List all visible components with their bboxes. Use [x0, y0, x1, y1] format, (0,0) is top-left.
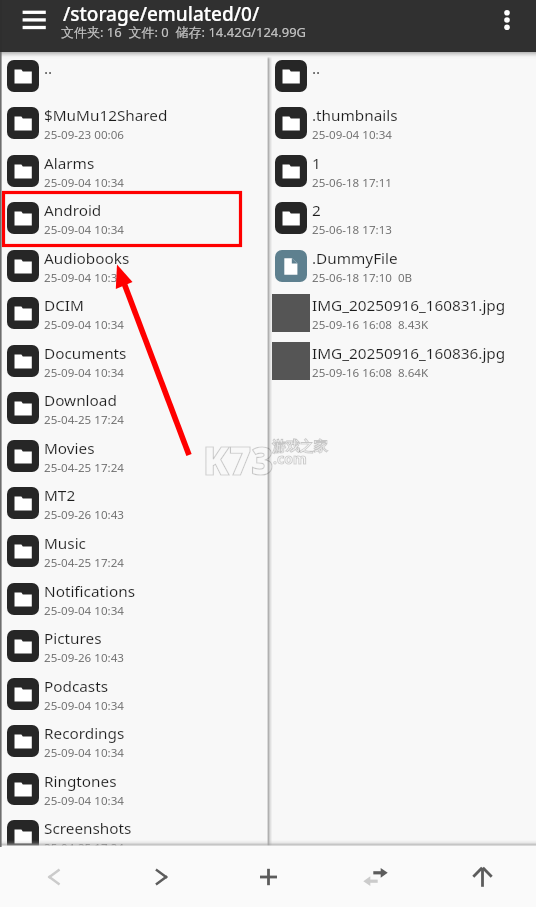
button[interactable]: Audiobooks [0, 242, 266, 290]
staticText: 25-09-26 10:43 [44, 507, 124, 523]
staticText: 25-09-04 10:34 [44, 793, 124, 809]
staticText: /storage/emulated/0/ [63, 1, 260, 27]
staticText: Alarms [44, 153, 95, 174]
button[interactable]: More options [487, 0, 527, 40]
button[interactable]: IMG_20250916_160831.jpg [272, 289, 536, 337]
staticText: Android [44, 200, 102, 221]
staticText: 25-04-25 17:24 [44, 555, 124, 571]
button[interactable]: MT2 [0, 479, 266, 527]
staticText: Documents [44, 343, 127, 364]
button[interactable]: Pictures [0, 622, 266, 670]
button[interactable]: Documents [0, 337, 266, 385]
button[interactable]: IMG_20250916_160836.jpg [272, 337, 536, 385]
button[interactable]: Download [0, 384, 266, 432]
staticText: 25-09-04 10:34 [44, 698, 124, 714]
staticText: K73 [203, 434, 274, 486]
staticText: 25-09-04 10:34 [44, 222, 124, 238]
staticText: 25-09-23 00:06 [44, 127, 124, 143]
staticText: Music [44, 533, 86, 554]
button[interactable]: Navigate forward [108, 847, 215, 907]
staticText: 25-09-04 10:34 [44, 270, 124, 286]
staticText: 25-06-18 17:11 [312, 175, 392, 191]
button[interactable]: .. [0, 52, 266, 100]
staticText: .com [273, 449, 307, 468]
button[interactable]: 1 [272, 147, 536, 195]
button[interactable]: .thumbnails [272, 99, 536, 147]
button[interactable]: Switch panes [322, 847, 429, 907]
button[interactable]: Alarms [0, 147, 266, 195]
staticText: Screenshots [44, 818, 132, 839]
staticText: 25-04-25 17:24 [44, 460, 124, 476]
staticText: .. [312, 58, 321, 79]
button[interactable]: Navigate back [0, 847, 108, 907]
staticText: $MuMu12Shared [44, 105, 168, 126]
staticText: IMG_20250916_160836.jpg [312, 343, 506, 364]
staticText: 25-09-04 10:34 [44, 745, 124, 761]
staticText: IMG_20250916_160831.jpg [312, 295, 506, 316]
staticText: 25-09-04 10:34 [312, 127, 392, 143]
staticText: 1 [312, 153, 321, 174]
staticText: 25-04-25 17:24 [44, 840, 124, 856]
button[interactable]: .DummyFile [272, 242, 536, 290]
button[interactable]: .. [272, 52, 536, 100]
staticText: DCIM [44, 295, 84, 316]
staticText: MT2 [44, 485, 76, 506]
staticText: 文件夹: 16 文件: 0 储存: 14.42G/124.99G [61, 23, 307, 41]
staticText: 25-09-16 16:08 8.64K [312, 365, 429, 381]
staticText: Pictures [44, 628, 102, 649]
staticText: 25-09-16 16:08 8.43K [312, 317, 429, 333]
staticText: 25-04-25 17:24 [44, 412, 124, 428]
staticText: .DummyFile [312, 248, 398, 269]
button[interactable]: Movies [0, 432, 266, 480]
button[interactable]: New file [215, 847, 322, 907]
button[interactable]: DCIM [0, 289, 266, 337]
staticText: 25-09-04 10:34 [44, 175, 124, 191]
button[interactable]: Notifications [0, 575, 266, 623]
staticText: Recordings [44, 723, 125, 744]
button[interactable]: Ringtones [0, 765, 266, 813]
staticText: Ringtones [44, 771, 117, 792]
staticText: .thumbnails [312, 105, 398, 126]
button[interactable]: Recordings [0, 717, 266, 765]
button[interactable]: $MuMu12Shared [0, 99, 266, 147]
staticText: Movies [44, 438, 95, 459]
button[interactable]: Screenshots [0, 812, 266, 860]
staticText: Audiobooks [44, 248, 130, 269]
staticText: 25-06-18 17:10 0B [312, 270, 413, 286]
button[interactable]: Android [0, 194, 266, 242]
staticText: .. [44, 58, 53, 79]
button[interactable]: Music [0, 527, 266, 575]
staticText: 25-09-26 10:43 [44, 650, 124, 666]
staticText: 游戏之家 [272, 438, 328, 455]
staticText: 2 [312, 200, 321, 221]
button[interactable]: Go up [429, 847, 536, 907]
button[interactable]: Podcasts [0, 670, 266, 718]
staticText: Notifications [44, 581, 135, 602]
staticText: 25-06-18 17:13 [312, 222, 392, 238]
button[interactable]: 2 [272, 194, 536, 242]
staticText: 25-09-04 10:34 [44, 603, 124, 619]
staticText: Podcasts [44, 676, 109, 697]
button[interactable]: Open navigation drawer [14, 6, 54, 46]
staticText: 25-09-04 10:34 [44, 365, 124, 381]
staticText: 25-09-04 10:34 [44, 317, 124, 333]
staticText: Download [44, 390, 117, 411]
